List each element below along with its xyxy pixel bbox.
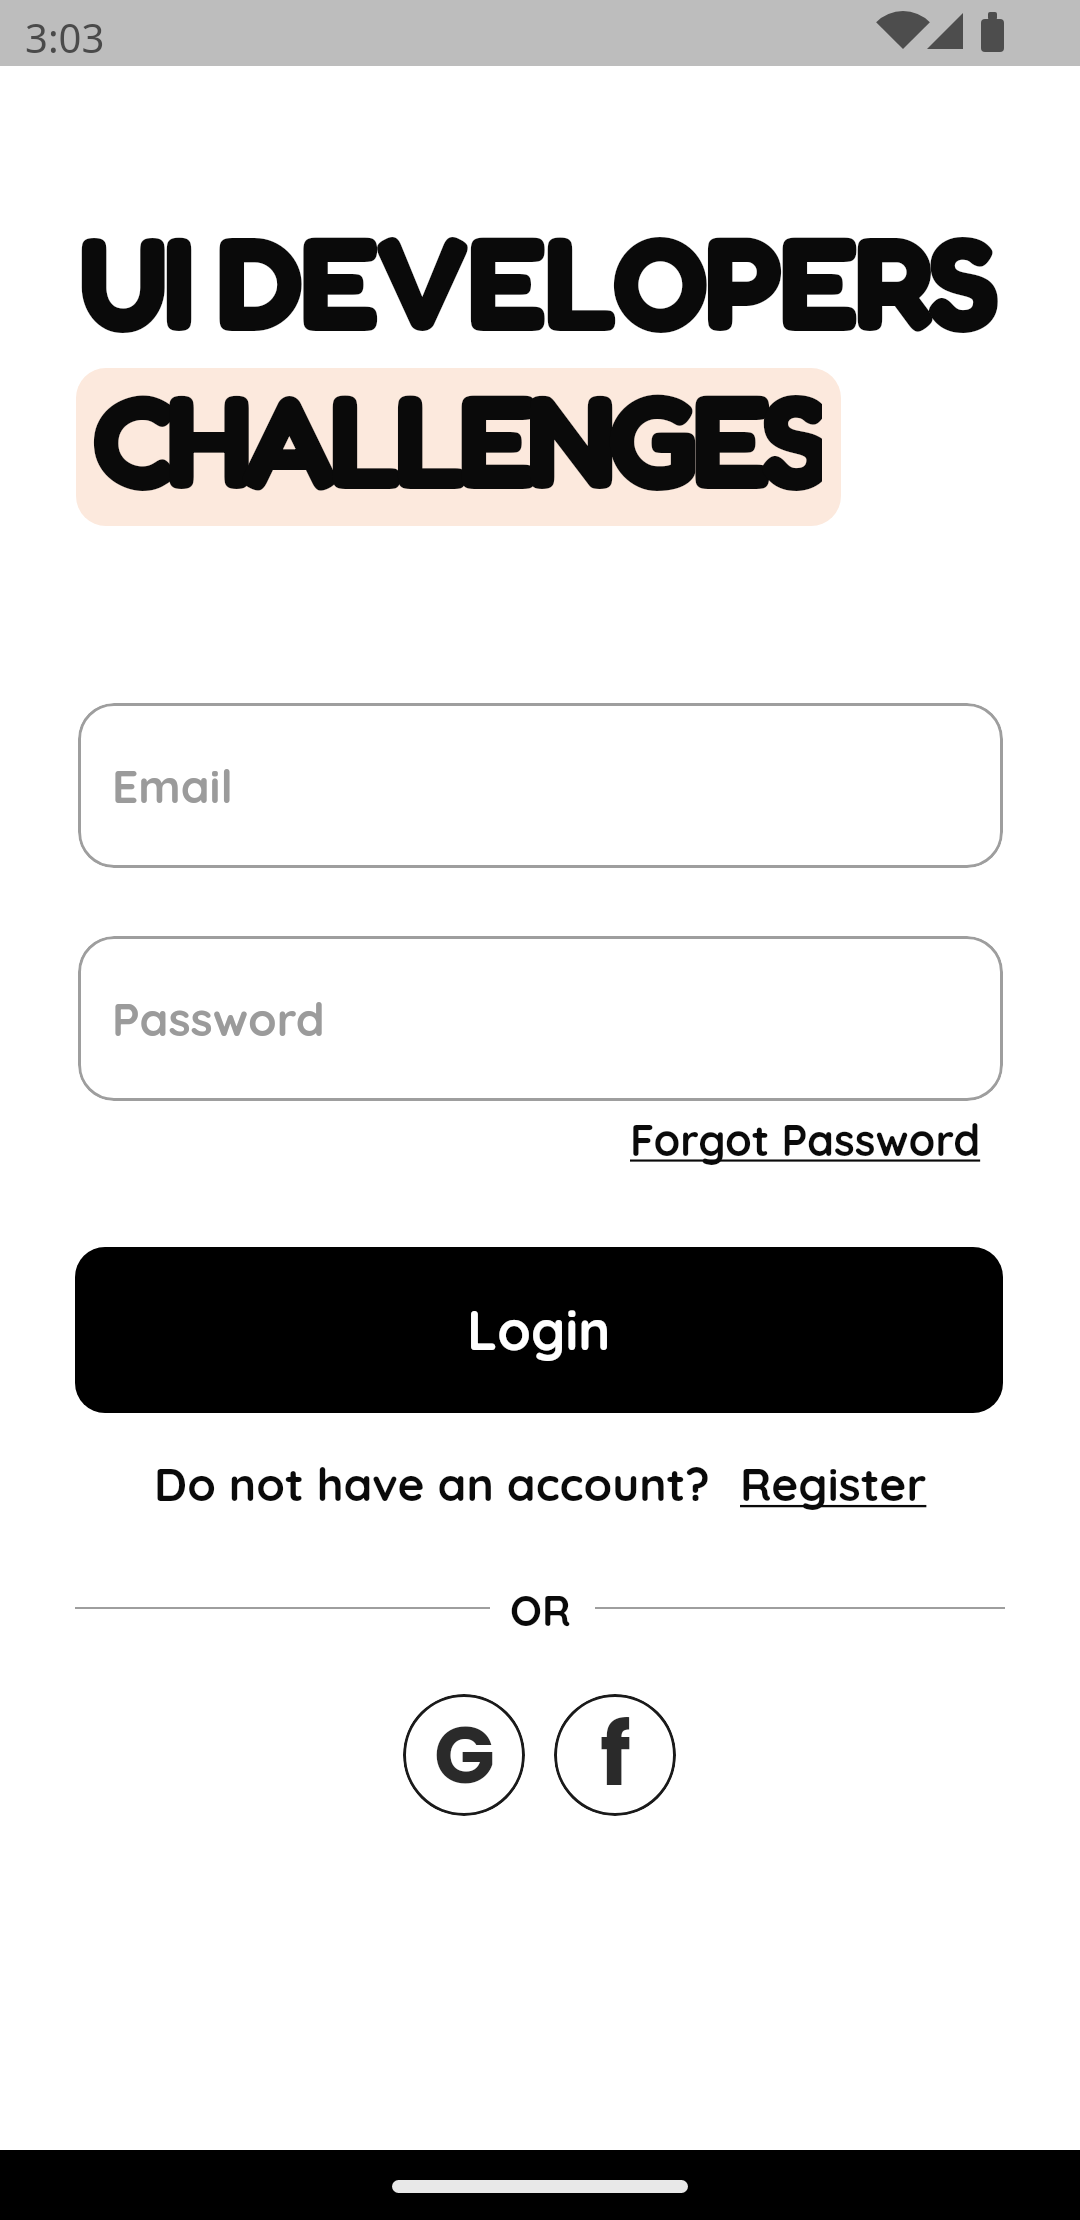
staticText: UI DEVELOPERS	[78, 199, 995, 361]
button[interactable]: Register	[740, 1455, 927, 1513]
staticText: 3:03	[25, 10, 105, 64]
staticText: f	[600, 1695, 631, 1815]
staticText: Password	[112, 990, 325, 1048]
button[interactable]: Password	[78, 936, 1003, 1101]
button[interactable]: f	[554, 1694, 676, 1816]
button[interactable]: G	[403, 1694, 525, 1816]
staticText: G	[434, 1699, 495, 1811]
staticText: OR	[510, 1584, 571, 1637]
button[interactable]: Login	[75, 1247, 1003, 1413]
staticText: CHALLENGES	[92, 368, 822, 515]
button[interactable]: Email	[78, 703, 1003, 868]
staticText: Do not have an account?	[154, 1455, 710, 1513]
staticText: Email	[112, 757, 233, 815]
staticText: Login	[467, 1296, 611, 1364]
button[interactable]: Forgot Password	[630, 1113, 981, 1167]
